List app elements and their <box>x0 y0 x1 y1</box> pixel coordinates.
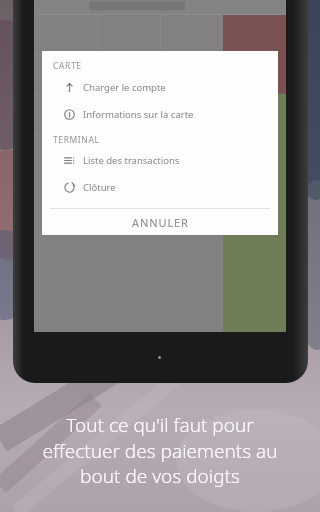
button[interactable]: 2 <box>98 95 160 134</box>
staticText: 0 <box>62 147 69 162</box>
button[interactable]: Clôture <box>42 179 278 196</box>
staticText: 1 <box>62 107 69 122</box>
button[interactable] <box>161 55 223 94</box>
staticText: TERMINAL <box>53 134 100 146</box>
button[interactable]: 1 <box>34 95 97 134</box>
staticText: 3 <box>189 107 196 122</box>
staticText: 2 <box>126 107 133 122</box>
staticText: Charger le compte <box>83 81 166 94</box>
button[interactable]: Effacer <box>223 15 286 94</box>
button[interactable]: 0 <box>34 135 97 174</box>
button[interactable] <box>34 55 97 94</box>
staticText: Informations sur la carte <box>83 108 194 121</box>
button[interactable]: ANNULER <box>42 209 278 235</box>
staticText: ANNULER <box>132 215 189 230</box>
staticText: Tout ce qu'il faut pour effectuer des pa… <box>42 412 278 488</box>
button[interactable]: Liste des transactions <box>42 152 278 169</box>
button[interactable] <box>98 135 160 174</box>
button[interactable]: Valider <box>223 94 286 332</box>
button[interactable]: Charger le compte <box>42 79 278 96</box>
button[interactable]: Informations sur la carte <box>42 106 278 123</box>
staticText: Liste des transactions <box>83 154 180 167</box>
button[interactable]: 3 <box>161 95 223 134</box>
button[interactable] <box>161 15 223 54</box>
button[interactable]: . <box>161 135 223 174</box>
button[interactable] <box>98 55 160 94</box>
staticText: Clôture <box>83 181 116 194</box>
button[interactable] <box>98 15 160 54</box>
staticText: CARTE <box>53 60 82 72</box>
button[interactable] <box>34 15 97 54</box>
